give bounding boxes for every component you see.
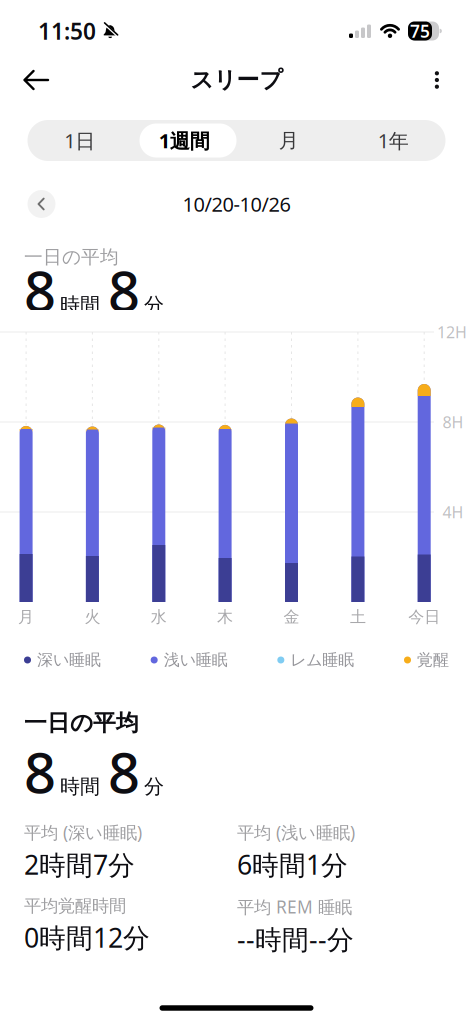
staticText: 分 xyxy=(144,293,164,317)
staticText: 分 xyxy=(144,774,164,799)
staticText: 月 xyxy=(279,128,299,153)
staticText: 12H xyxy=(437,321,467,343)
staticText: 浅い睡眠 xyxy=(164,650,228,670)
staticText: 8 xyxy=(24,734,56,809)
button[interactable]: Back xyxy=(0,54,49,105)
staticText: 75 xyxy=(410,19,430,42)
button[interactable]: 1年 xyxy=(341,120,445,161)
staticText: 2時間7分 xyxy=(24,847,135,882)
staticText: 月 xyxy=(18,607,34,627)
staticText: 今日 xyxy=(408,607,440,627)
staticText: 1週間 xyxy=(159,127,210,154)
staticText: 11:50 xyxy=(38,16,96,46)
staticText: 6時間1分 xyxy=(237,847,348,882)
staticText: 一日の平均 xyxy=(24,709,139,737)
button[interactable]: 月 xyxy=(236,120,341,161)
staticText: 平均 (浅い睡眠) xyxy=(237,821,355,844)
button[interactable]: More xyxy=(435,57,473,103)
staticText: 一日の平均 xyxy=(24,245,119,268)
staticText: 0時間12分 xyxy=(24,920,150,955)
staticText: 1年 xyxy=(378,127,409,154)
staticText: 平均 (深い睡眠) xyxy=(24,821,142,844)
button[interactable]: 1週間 xyxy=(132,120,236,161)
staticText: 8 xyxy=(108,734,140,809)
staticText: 8 xyxy=(108,253,140,327)
staticText: 時間 xyxy=(60,774,100,799)
staticText: 深い睡眠 xyxy=(37,650,101,670)
staticText: 金 xyxy=(283,607,299,627)
staticText: レム睡眠 xyxy=(290,650,354,670)
staticText: 覚醒 xyxy=(417,650,449,670)
staticText: 10/20-10/26 xyxy=(182,191,290,217)
button[interactable]: 1日 xyxy=(27,120,132,161)
staticText: 時間 xyxy=(60,293,100,317)
staticText: 土 xyxy=(350,607,366,627)
staticText: 木 xyxy=(217,607,233,627)
staticText: 平均覚醒時間 xyxy=(24,895,126,917)
staticText: スリープ xyxy=(190,66,282,94)
staticText: 1日 xyxy=(64,127,95,154)
staticText: 4H xyxy=(442,501,463,523)
button[interactable]: Previous week xyxy=(0,190,55,218)
staticText: 水 xyxy=(151,607,167,627)
staticText: --時間--分 xyxy=(237,921,354,957)
staticText: 火 xyxy=(84,607,100,627)
staticText: 平均 REM 睡眠 xyxy=(237,895,352,918)
staticText: 8H xyxy=(442,411,463,433)
staticText: 8 xyxy=(24,253,56,327)
